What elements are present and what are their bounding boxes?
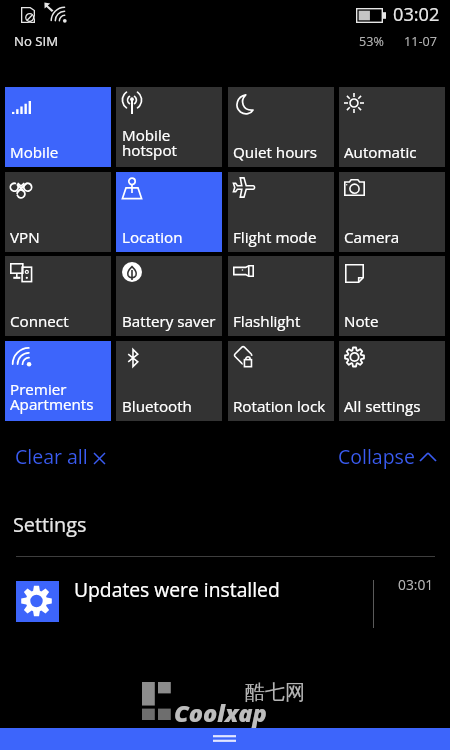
button[interactable] — [339, 256, 445, 336]
staticText: All settings — [344, 396, 421, 417]
staticText: VPN — [10, 227, 40, 248]
button[interactable] — [116, 256, 222, 336]
staticText: Automatic — [344, 142, 417, 163]
staticText: Mobile hotspot — [122, 125, 177, 160]
staticText: 03:02 — [393, 2, 440, 27]
staticText: 酷七网 — [245, 680, 305, 705]
staticText: 53% — [359, 33, 384, 50]
button[interactable]: Clear all — [15, 443, 103, 470]
other: Home — [213, 735, 236, 742]
staticText: 11-07 — [404, 33, 437, 50]
staticText: Rotation lock — [233, 396, 326, 417]
staticText: Flashlight — [233, 311, 301, 332]
button[interactable] — [339, 172, 445, 252]
button[interactable] — [116, 172, 222, 252]
staticText: Flight mode — [233, 227, 317, 248]
staticText: Collapse — [338, 443, 415, 470]
staticText: Clear all — [15, 443, 88, 470]
button[interactable] — [0, 566, 450, 628]
button[interactable] — [5, 341, 111, 421]
staticText: Mobile — [10, 142, 59, 163]
staticText: Location — [122, 227, 183, 248]
staticText: Bluetooth — [122, 396, 192, 417]
button[interactable] — [116, 87, 222, 167]
button[interactable] — [228, 341, 334, 421]
staticText: Quiet hours — [233, 142, 318, 163]
other: Navigation bar — [0, 728, 450, 750]
button[interactable] — [228, 172, 334, 252]
staticText: Note — [344, 311, 379, 332]
staticText: Updates were installed — [74, 576, 280, 602]
staticText: No SIM — [14, 32, 59, 50]
button[interactable] — [116, 341, 222, 421]
button[interactable] — [228, 256, 334, 336]
staticText: Premier Apartments — [10, 379, 94, 414]
button[interactable] — [339, 87, 445, 167]
button[interactable] — [5, 172, 111, 252]
button[interactable]: Collapse — [338, 443, 436, 470]
button[interactable] — [5, 87, 111, 167]
staticText: Battery saver — [122, 311, 216, 332]
button[interactable] — [5, 256, 111, 336]
button[interactable] — [228, 87, 334, 167]
staticText: Connect — [10, 311, 69, 332]
button[interactable] — [339, 341, 445, 421]
staticText: 03:01 — [398, 575, 434, 594]
staticText: Settings — [13, 511, 87, 538]
staticText: Coolxap — [174, 697, 267, 729]
staticText: Camera — [344, 227, 400, 248]
